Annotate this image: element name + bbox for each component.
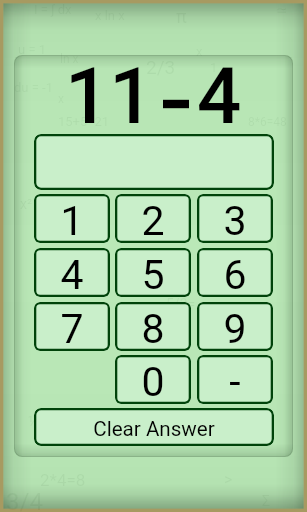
staticText: 5 — [141, 251, 165, 297]
button[interactable]: 7 — [34, 302, 110, 351]
staticText: 2 — [141, 197, 165, 243]
staticText: ½ — [28, 412, 41, 431]
staticText: 0 — [141, 358, 165, 404]
button[interactable]: 6 — [197, 248, 273, 297]
staticText: - — [229, 358, 241, 404]
staticText: 6 — [223, 251, 247, 297]
staticText: 5/3= — [166, 296, 196, 312]
staticText: > — [224, 470, 233, 489]
staticText: 15+5=21 — [58, 114, 110, 129]
staticText: ln x — [60, 52, 79, 66]
staticText: ≃ — [276, 2, 288, 18]
staticText: π — [176, 6, 187, 27]
staticText: 3 — [223, 197, 247, 243]
staticText: du = -1 — [14, 80, 53, 95]
staticText: 1 — [60, 197, 84, 243]
staticText: u = 1 — [18, 42, 47, 57]
button[interactable]: 3 — [197, 194, 273, 243]
staticText: 1 — [210, 60, 218, 75]
button[interactable]: Answer — [34, 134, 274, 190]
staticText: 4 — [197, 51, 242, 142]
staticText: 4 — [60, 251, 84, 297]
staticText: 2*4=8 — [40, 470, 86, 490]
button[interactable]: 0 — [115, 355, 191, 404]
staticText: x² — [20, 196, 33, 212]
staticText: x ln x — [95, 8, 125, 23]
button[interactable]: Minus — [197, 355, 273, 404]
button[interactable]: Clear Answer — [34, 408, 274, 446]
staticText: ∑ — [262, 492, 270, 507]
staticText: 9 — [223, 305, 247, 351]
staticText: 8*6=48 — [248, 115, 287, 129]
staticText: 11 — [65, 51, 154, 142]
staticText: 8 — [141, 305, 165, 351]
button[interactable]: 4 — [34, 248, 110, 297]
button[interactable]: 8 — [115, 302, 191, 351]
button[interactable]: 1 — [34, 194, 110, 243]
staticText: 2/3 — [146, 56, 176, 78]
staticText: I = ∫ dx — [34, 2, 72, 17]
button[interactable]: 2 — [115, 194, 191, 243]
staticText: Clear Answer — [93, 417, 215, 441]
staticText: 7 — [60, 305, 84, 351]
button[interactable]: 9 — [197, 302, 273, 351]
staticText: 3/4 — [6, 488, 43, 512]
button[interactable]: 5 — [115, 248, 191, 297]
staticText: x — [196, 44, 203, 59]
